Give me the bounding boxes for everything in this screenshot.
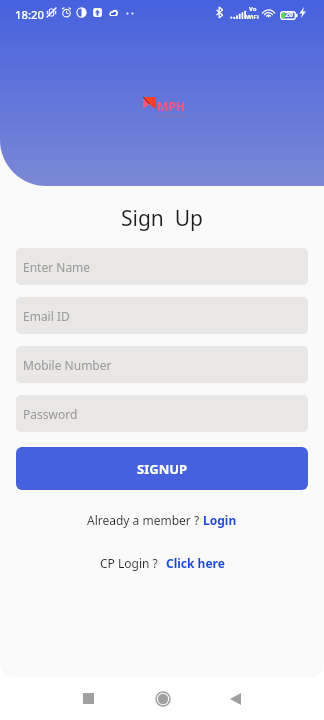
staticText: SIGNUP [137, 460, 188, 478]
button[interactable]: Back [211, 683, 260, 714]
button[interactable]: Home [138, 681, 187, 716]
button[interactable]: Enter Name [16, 248, 308, 285]
button[interactable]: Email ID [16, 297, 308, 334]
staticText: Password [23, 406, 78, 422]
button[interactable]: Recent apps [64, 683, 113, 714]
staticText: Login [203, 512, 237, 528]
staticText: WiFi [246, 13, 259, 21]
staticText: Enter Name [23, 259, 91, 275]
button[interactable]: SIGNUP [16, 447, 308, 490]
staticText: 18:20 [15, 7, 44, 22]
staticText: Amazing Moments [157, 113, 187, 117]
button[interactable]: Login [203, 512, 237, 528]
button[interactable]: Password [16, 395, 308, 432]
staticText: Mobile Number [23, 357, 112, 373]
staticText: MPH [157, 98, 185, 114]
staticText: Click here [166, 555, 225, 571]
staticText: Vo [249, 5, 257, 13]
staticText: Sign Up [0, 204, 324, 233]
staticText: Already a member ? [87, 512, 203, 528]
button[interactable]: Click here [166, 555, 225, 571]
button[interactable]: Mobile Number [16, 346, 308, 383]
staticText: CP Login ? [100, 555, 158, 571]
staticText: Email ID [23, 308, 70, 324]
staticText: 20 [285, 10, 294, 20]
